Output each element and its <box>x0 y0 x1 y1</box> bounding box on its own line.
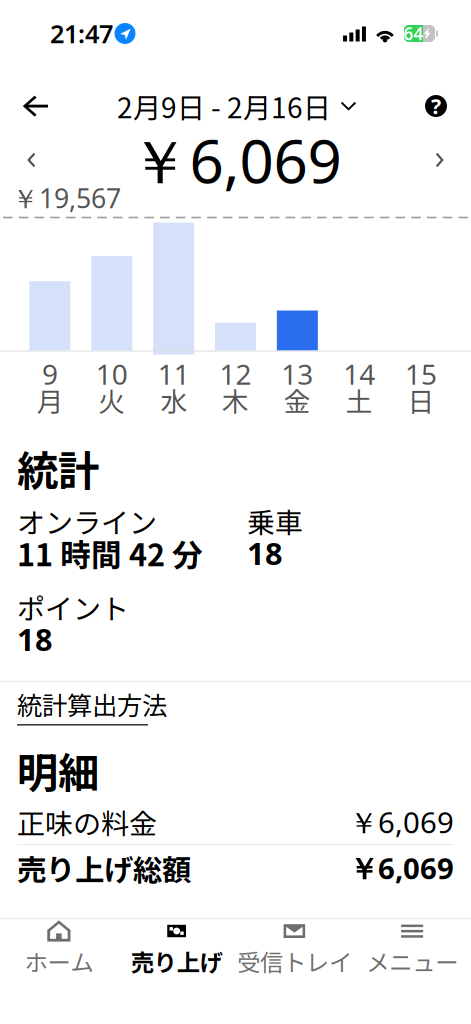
staticText: オンライン <box>17 501 157 541</box>
button[interactable]: 売り上げ <box>118 919 236 991</box>
staticText: 売り上げ <box>131 944 223 978</box>
staticText: 木 <box>222 381 249 419</box>
button[interactable]: メニュー <box>353 919 471 991</box>
staticText: 11 時間 42 分 <box>17 531 203 575</box>
staticText: 乗車 <box>247 501 303 541</box>
button[interactable]: Next week <box>423 140 457 180</box>
button[interactable]: ホーム <box>0 919 118 991</box>
staticText: 21:47 <box>50 17 113 50</box>
button[interactable]: 受信トレイ <box>235 919 353 991</box>
staticText: ? <box>431 92 441 120</box>
staticText: 統計 <box>17 438 99 498</box>
staticText: 14 <box>343 355 375 393</box>
staticText: 2月9日 - 2月16日 <box>117 86 331 126</box>
staticText: ホーム <box>24 944 93 978</box>
staticText: 18 <box>17 619 53 659</box>
button[interactable]: 統計算出方法 <box>0 682 471 729</box>
staticText: 15 <box>405 355 437 393</box>
staticText: 火 <box>98 381 125 419</box>
staticText: 受信トレイ <box>237 944 352 978</box>
staticText: 土 <box>346 381 373 419</box>
staticText: 64 <box>403 22 423 45</box>
button[interactable]: Help <box>413 83 459 129</box>
button[interactable]: 2月9日 - 2月16日 <box>117 83 356 129</box>
staticText: 日 <box>408 381 435 419</box>
staticText: 金 <box>284 381 311 419</box>
staticText: ポイント <box>17 587 129 627</box>
staticText: 明細 <box>17 740 99 800</box>
staticText: 11 <box>158 355 190 393</box>
staticText: 18 <box>247 533 283 573</box>
staticText: ￥6,069 <box>129 120 341 200</box>
staticText: ￥6,069 <box>349 802 454 841</box>
staticText: 売り上げ総額 <box>17 847 191 889</box>
staticText: 統計算出方法 <box>17 686 167 722</box>
staticText: 12 <box>219 355 251 393</box>
button[interactable]: Previous week <box>14 140 48 180</box>
staticText: メニュー <box>366 944 458 978</box>
staticText: 9 <box>42 355 58 393</box>
staticText: ￥6,069 <box>349 848 454 887</box>
staticText: 水 <box>160 381 187 419</box>
staticText: 13 <box>281 355 313 393</box>
staticText: 10 <box>96 355 128 393</box>
staticText: 正味の料金 <box>17 802 157 842</box>
staticText: 月 <box>36 381 63 419</box>
staticText: ￥19,567 <box>12 180 121 216</box>
button[interactable]: Back <box>14 83 60 129</box>
